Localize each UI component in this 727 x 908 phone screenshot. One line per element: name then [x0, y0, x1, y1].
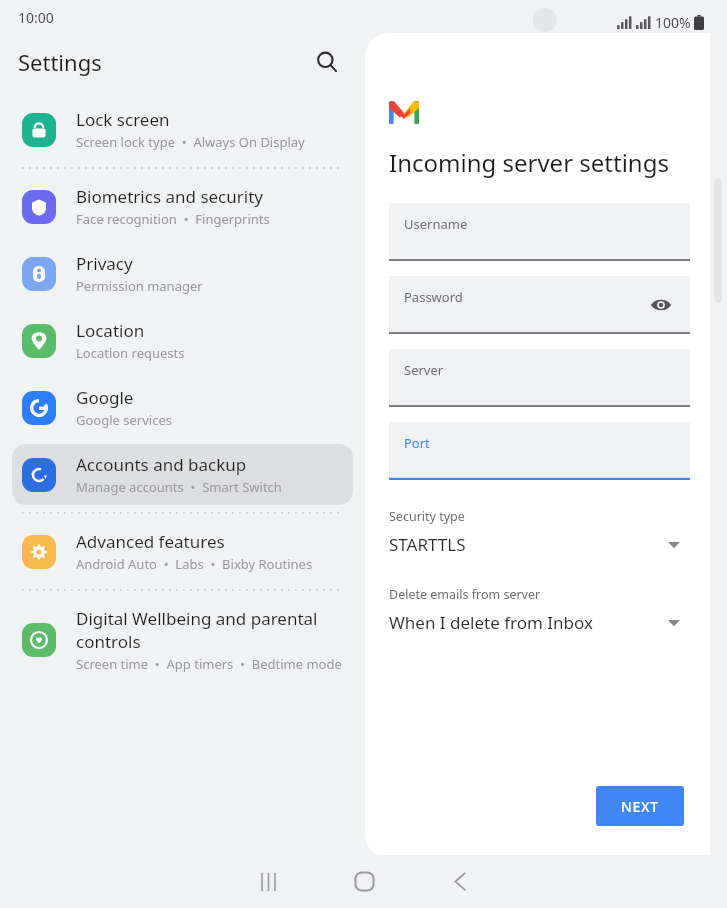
button[interactable]: NEXT	[596, 786, 684, 826]
staticText: Advanced features	[76, 530, 225, 553]
button[interactable]: Username	[389, 203, 690, 261]
button[interactable]: Delete emails from server	[389, 586, 690, 634]
button[interactable]: Show password	[646, 290, 676, 320]
button[interactable]: Home	[316, 855, 412, 908]
staticText: Digital Wellbeing and parental controls	[76, 607, 343, 653]
button[interactable]: Password	[389, 276, 690, 334]
staticText: Biometrics and security	[76, 185, 263, 208]
staticText: Password	[404, 288, 463, 306]
button[interactable]: Lock screen	[12, 99, 353, 160]
button[interactable]: Accounts and backup	[12, 444, 353, 505]
staticText: Settings	[18, 47, 102, 77]
button[interactable]: Privacy	[12, 243, 353, 304]
staticText: STARTTLS	[389, 533, 466, 556]
staticText: Location	[76, 319, 145, 342]
staticText: 100%	[655, 13, 691, 32]
staticText: Screen time • App timers • Bedtime mode	[76, 655, 342, 673]
button[interactable]: Location	[12, 310, 353, 371]
staticText: When I delete from Inbox	[389, 611, 593, 634]
staticText: Privacy	[76, 252, 133, 275]
staticText: Server	[404, 361, 444, 379]
staticText: Google	[76, 386, 134, 409]
staticText: Google services	[76, 411, 172, 429]
staticText: NEXT	[621, 797, 659, 816]
button[interactable]: Search	[307, 42, 347, 82]
button[interactable]: Security type	[389, 508, 690, 556]
button[interactable]: Back	[412, 855, 508, 908]
button[interactable]: Google	[12, 377, 353, 438]
button[interactable]: Recents	[220, 855, 316, 908]
staticText: Username	[404, 215, 468, 233]
staticText: Android Auto • Labs • Bixby Routines	[76, 555, 313, 573]
button[interactable]: Server	[389, 349, 690, 407]
staticText: Incoming server settings	[389, 146, 669, 179]
button[interactable]: Port	[389, 422, 690, 480]
staticText: Location requests	[76, 344, 185, 362]
staticText: Accounts and backup	[76, 453, 247, 476]
button[interactable]: Digital Wellbeing and parental controls	[12, 598, 353, 682]
staticText: Delete emails from server	[389, 586, 541, 603]
staticText: Port	[404, 434, 430, 452]
staticText: Face recognition • Fingerprints	[76, 210, 270, 228]
staticText: Security type	[389, 508, 465, 525]
staticText: Screen lock type • Always On Display	[76, 133, 305, 151]
staticText: Manage accounts • Smart Switch	[76, 478, 282, 496]
staticText: Permission manager	[76, 277, 203, 295]
staticText: 10:00	[18, 8, 54, 27]
staticText: Lock screen	[76, 108, 170, 131]
button[interactable]: Advanced features	[12, 521, 353, 582]
button[interactable]: Biometrics and security	[12, 176, 353, 237]
